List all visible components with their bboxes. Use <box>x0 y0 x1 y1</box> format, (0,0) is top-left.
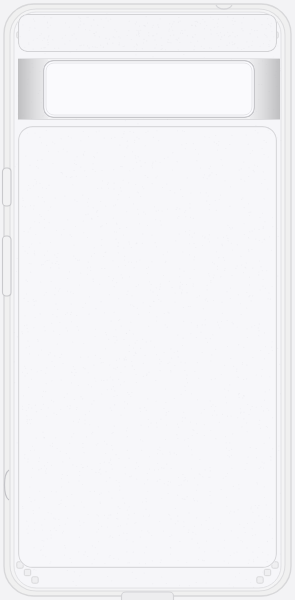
button[interactable]: Search <box>43 60 255 118</box>
button[interactable]: Top app bar <box>18 14 277 52</box>
button[interactable]: Content <box>18 126 277 568</box>
